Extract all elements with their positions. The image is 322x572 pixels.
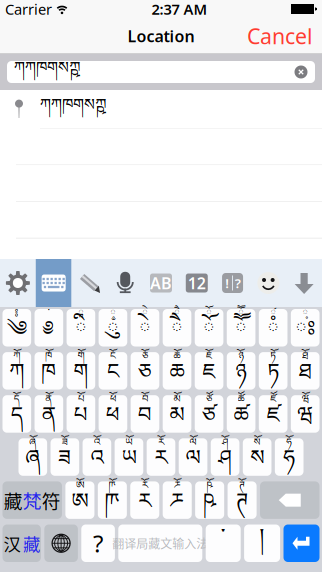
button[interactable]: ཡོ [115, 438, 143, 476]
staticText: ༔ [15, 301, 19, 330]
button[interactable]: ༹ [259, 309, 287, 346]
button[interactable]: ཱ [67, 309, 95, 346]
staticText: ཧ [283, 434, 295, 494]
staticText: ག [73, 348, 88, 408]
staticText: ། [260, 511, 265, 572]
button[interactable]: ེ [131, 309, 159, 346]
button[interactable]: ཚོ [227, 395, 255, 433]
button[interactable]: ཆོ [163, 352, 191, 390]
button[interactable]: ཻ [163, 309, 191, 346]
staticText: ཧོ [286, 431, 292, 459]
button[interactable]: ། [244, 524, 280, 562]
staticText: 12 [188, 272, 206, 294]
staticText: ཆ [169, 348, 184, 408]
button[interactable]: ༷ [291, 309, 319, 346]
button[interactable]: Clear text [290, 61, 312, 83]
button[interactable]: ངོ [99, 352, 127, 390]
button[interactable]: Hide keyboard [286, 259, 322, 307]
button[interactable]: ཨོ [65, 481, 94, 519]
button[interactable]: ཤོ [211, 438, 239, 476]
button[interactable]: Cancel [238, 14, 322, 58]
staticText: 梵 [23, 487, 42, 514]
button[interactable]: ཇོ [195, 352, 223, 390]
staticText: 藏 [4, 487, 23, 514]
staticText: ཫ [105, 477, 120, 537]
button[interactable]: 翻译局藏文输入法 [118, 524, 202, 562]
button[interactable]: པོ [67, 395, 95, 433]
button[interactable]: 汉 [2, 524, 41, 562]
button[interactable]: གོ [67, 352, 95, 390]
staticText: 符 [42, 487, 61, 514]
button[interactable]: ཊོ [228, 481, 257, 519]
staticText: ◌ུ [107, 304, 119, 365]
staticText: ཏ [267, 348, 279, 408]
button[interactable]: ཝོ [291, 395, 319, 433]
button[interactable]: Next keyboard [44, 524, 78, 562]
staticText: འོ [94, 431, 100, 459]
button[interactable]: ཙོ [195, 395, 223, 433]
staticText: ◌ཽ [235, 304, 247, 365]
button[interactable]: ཕོ [99, 395, 127, 433]
button[interactable]: ཧོ [275, 438, 303, 476]
staticText: ཇ [203, 348, 216, 408]
button[interactable]: ཞོ [18, 438, 47, 476]
button[interactable]: Voice input [107, 259, 143, 307]
button[interactable]: Return [283, 524, 319, 562]
button[interactable]: ཥོ [195, 481, 224, 519]
button[interactable]: ༵ [99, 309, 127, 346]
staticText: མོ [173, 388, 180, 416]
button[interactable]: ོ [195, 309, 223, 346]
button[interactable]: ཬོ [163, 481, 192, 519]
staticText: ཫོ [109, 474, 116, 502]
staticText: ཆོ [173, 344, 180, 373]
button[interactable]: ཽ [227, 309, 255, 346]
button[interactable]: Emoji [250, 259, 286, 307]
button[interactable]: ༔ [2, 309, 31, 346]
button[interactable]: ཟོ [50, 438, 79, 476]
button[interactable]: ཀོ [2, 352, 31, 390]
button[interactable]: ཉོ [227, 352, 255, 390]
staticText: ཕ [106, 391, 120, 451]
button[interactable]: ཁོ [34, 352, 63, 390]
button[interactable]: མོ [163, 395, 191, 433]
button[interactable]: བོ [131, 395, 159, 433]
button[interactable]: Letters [143, 259, 179, 307]
button[interactable]: ཐོ [291, 352, 319, 390]
button[interactable]: རོ [147, 438, 175, 476]
button[interactable]: Handwriting [72, 259, 107, 307]
staticText: ཻ [174, 301, 180, 330]
button[interactable]: Settings [0, 259, 36, 307]
staticText: Location [127, 25, 194, 47]
button[interactable]: Keyboard [36, 259, 72, 307]
button[interactable]: 藏 [2, 481, 62, 519]
button[interactable]: ཫོ [98, 481, 127, 519]
staticText: ༄ [7, 304, 27, 365]
button[interactable]: ཀཀཁགསཀྵ [0, 90, 322, 128]
button[interactable]: ་ [206, 524, 241, 562]
staticText: ངོ [110, 344, 116, 373]
staticText: ༌ [48, 301, 50, 330]
button[interactable]: དོ [2, 395, 31, 433]
button[interactable]: ཏོ [259, 352, 287, 390]
button[interactable]: Punctuation [215, 259, 250, 307]
button[interactable]: ཛོ [259, 395, 287, 433]
staticText: ལ [185, 434, 200, 494]
button[interactable]: ༌ [34, 309, 63, 346]
staticText: 2:37 AM [151, 0, 207, 19]
staticText: ◌ི [75, 304, 87, 365]
button[interactable]: ནོ [34, 395, 63, 433]
button[interactable]: ? [81, 524, 115, 562]
button[interactable]: འོ [83, 438, 111, 476]
button[interactable]: ཪོ [130, 481, 159, 519]
button[interactable]: ཅོ [131, 352, 159, 390]
button[interactable]: སོ [243, 438, 271, 476]
staticText: Cancel [247, 22, 313, 50]
staticText: 藏 [23, 531, 40, 556]
button[interactable]: Numbers [179, 259, 215, 307]
button[interactable]: Delete [260, 481, 319, 519]
staticText: ཟོ [62, 431, 68, 459]
staticText: ད [11, 391, 23, 451]
staticText: ཊོ [239, 474, 245, 502]
button[interactable]: ལོ [179, 438, 207, 476]
staticText: 翻译局藏文输入法 [112, 535, 208, 552]
